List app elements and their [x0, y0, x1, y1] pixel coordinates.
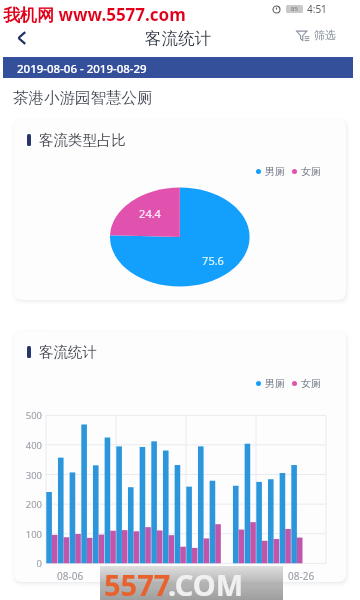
button[interactable]: Back: [8, 24, 36, 52]
staticText: 男厕: [265, 165, 285, 178]
staticText: 女厕: [301, 165, 321, 178]
button[interactable]: 筛选: [296, 28, 336, 42]
button[interactable]: 2019-08-06 - 2019-08-29: [3, 57, 353, 78]
staticText: 500: [16, 409, 42, 422]
staticText: .COM: [168, 565, 244, 600]
staticText: 2019-08-06 - 2019-08-29: [17, 61, 147, 77]
staticText: 08-26: [288, 569, 315, 582]
staticText: 客流统计: [39, 343, 97, 361]
staticText: 茶港小游园智慧公厕: [13, 88, 153, 108]
staticText: 客流统计: [145, 28, 211, 49]
staticText: 24.4: [137, 206, 163, 221]
staticText: 男厕: [265, 377, 285, 390]
staticText: 0: [16, 557, 42, 570]
staticText: 筛选: [314, 28, 336, 42]
button[interactable]: 客流类型占比: [14, 119, 346, 300]
staticText: 100: [16, 528, 42, 541]
staticText: 75.6: [200, 253, 226, 268]
staticText: 客流类型占比: [39, 131, 126, 149]
staticText: 08-06: [57, 569, 84, 582]
staticText: 5577: [104, 565, 171, 600]
button[interactable]: 客流统计: [14, 331, 346, 582]
staticText: 200: [16, 498, 42, 511]
staticText: 85: [291, 5, 298, 13]
staticText: 400: [16, 439, 42, 452]
staticText: 我机网 www.5577.com: [3, 3, 186, 26]
staticText: 4:51: [307, 2, 327, 16]
staticText: 女厕: [301, 377, 321, 390]
staticText: 300: [16, 469, 42, 482]
